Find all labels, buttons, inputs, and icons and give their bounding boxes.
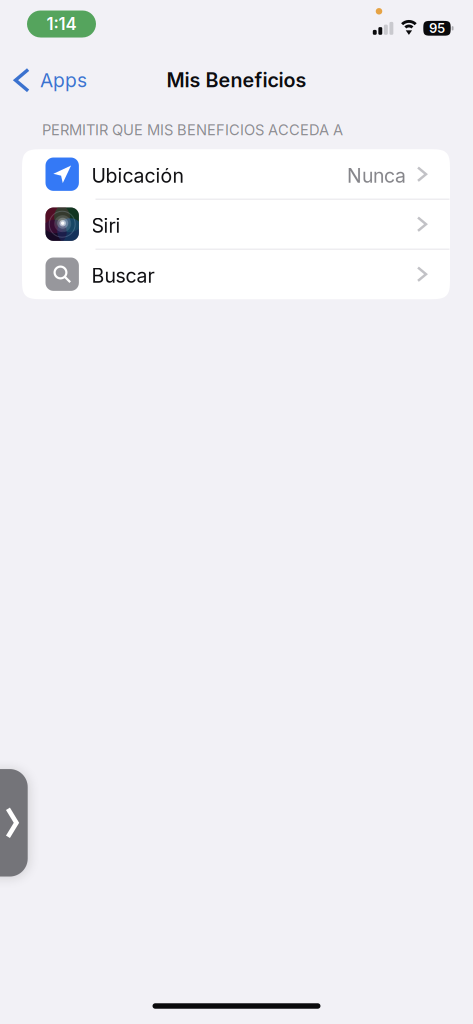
staticText: PERMITIR QUE MIS BENEFICIOS ACCEDA A	[42, 121, 343, 139]
staticText: Ubicación	[91, 164, 183, 187]
button[interactable]: Buscar	[22, 249, 450, 299]
button[interactable]: Ubicación	[22, 149, 450, 199]
staticText: 1:14	[46, 14, 76, 34]
staticText: 95	[429, 20, 445, 36]
button[interactable]: Go back	[0, 769, 28, 876]
staticText: Nunca	[347, 164, 406, 187]
button[interactable]: Siri	[22, 199, 450, 249]
staticText: Siri	[91, 214, 120, 237]
staticText: Buscar	[91, 264, 154, 287]
staticText: Apps	[40, 69, 87, 92]
staticText: Mis Beneficios	[166, 68, 306, 92]
button[interactable]: Apps	[0, 60, 99, 101]
